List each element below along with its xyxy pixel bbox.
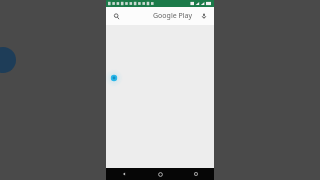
button[interactable]: Voice search [198,10,210,22]
button[interactable]: Recent apps [178,168,214,180]
button[interactable]: Open navigation menu [109,9,123,23]
button[interactable]: Back [106,168,142,180]
button[interactable]: Home [142,168,178,180]
staticText: Google Play [153,11,192,21]
